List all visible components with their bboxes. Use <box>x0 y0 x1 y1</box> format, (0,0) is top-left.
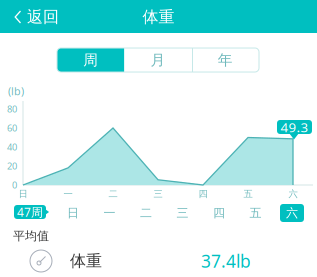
staticText: 三 <box>176 206 188 220</box>
button[interactable]: 周 <box>57 48 124 72</box>
staticText: 体重 <box>142 7 174 27</box>
staticText: 47周 <box>17 204 43 220</box>
staticText: 体重 <box>70 251 102 271</box>
staticText: 平均值 <box>13 229 49 243</box>
staticText: 40 <box>7 141 17 153</box>
staticText: 日 <box>18 188 27 200</box>
staticText: 一 <box>103 206 115 220</box>
staticText: 80 <box>7 103 17 115</box>
staticText: 三 <box>153 188 162 200</box>
staticText: 0 <box>12 179 17 191</box>
staticText: 年 <box>218 51 233 69</box>
staticText: 四 <box>198 188 207 200</box>
staticText: 周 <box>83 51 98 69</box>
button[interactable]: 月 <box>124 48 192 72</box>
staticText: (lb) <box>8 84 24 98</box>
staticText: 20 <box>7 160 17 172</box>
staticText: 37.4lb <box>201 249 251 272</box>
staticText: 日 <box>67 206 79 220</box>
staticText: 返回 <box>27 7 59 27</box>
staticText: 一 <box>63 188 72 200</box>
staticText: 四 <box>213 206 225 220</box>
staticText: 月 <box>150 51 165 69</box>
button[interactable]: 二 <box>134 204 158 222</box>
button[interactable]: 一 <box>97 204 121 222</box>
staticText: 二 <box>140 206 152 220</box>
button[interactable]: 三 <box>170 204 194 222</box>
button[interactable]: 四 <box>207 204 231 222</box>
staticText: 六 <box>286 206 298 220</box>
staticText: 60 <box>7 122 17 134</box>
staticText: 五 <box>243 188 252 200</box>
staticText: 五 <box>249 206 261 220</box>
button[interactable]: 日 <box>61 204 85 222</box>
button[interactable]: 年 <box>192 48 259 72</box>
button[interactable]: 返回 <box>0 0 67 34</box>
button[interactable]: 六 <box>280 204 304 222</box>
staticText: 二 <box>108 188 117 200</box>
button[interactable]: 五 <box>243 204 267 222</box>
button[interactable]: 47周 <box>14 205 50 219</box>
staticText: 49.3 <box>280 118 308 136</box>
staticText: 六 <box>288 188 297 200</box>
